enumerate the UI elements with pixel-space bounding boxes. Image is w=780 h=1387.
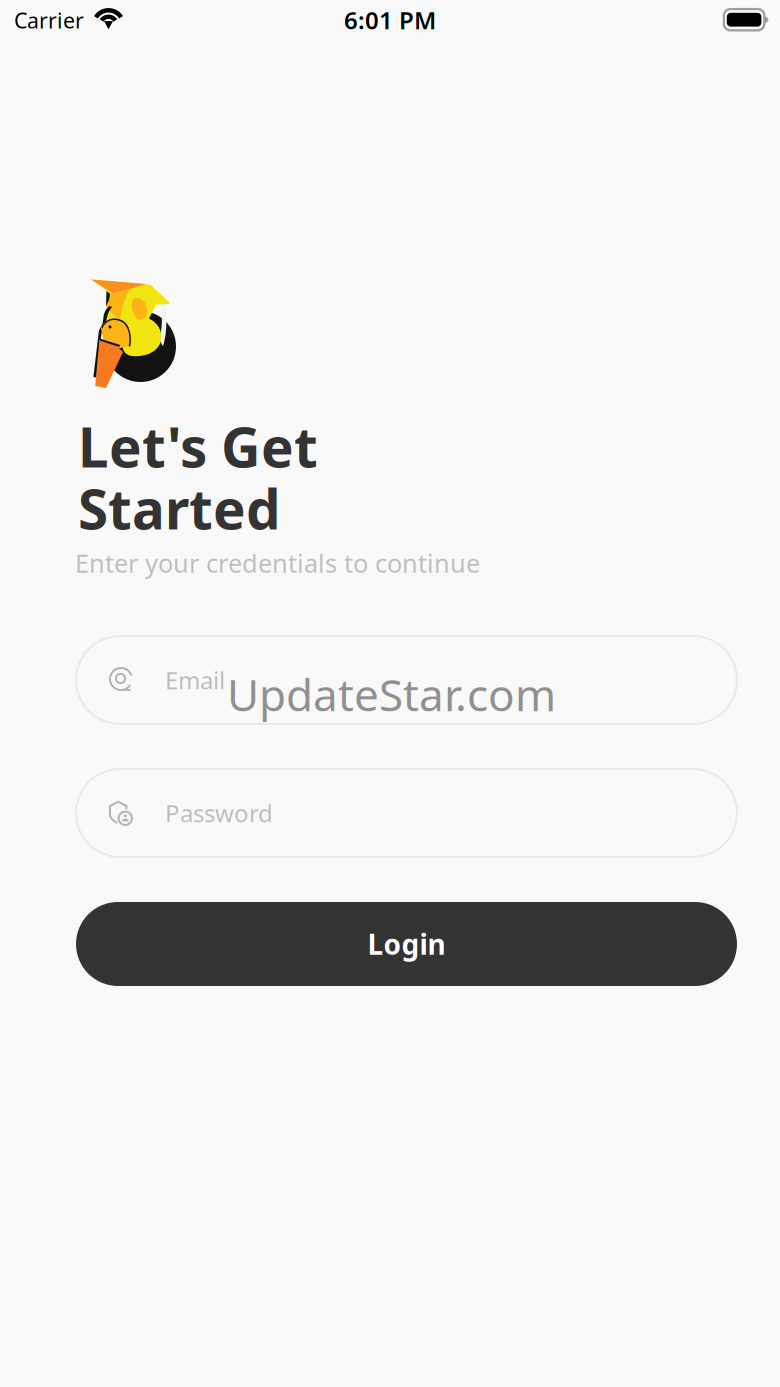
staticText: Enter your credentials to continue	[75, 546, 480, 580]
staticText: UpdateStar.com	[227, 665, 556, 723]
staticText: Let's Get	[78, 410, 318, 483]
staticText: Email	[165, 664, 225, 696]
button[interactable]: Email	[76, 636, 737, 724]
button[interactable]: Password	[76, 769, 737, 857]
staticText: 6:01 PM	[344, 4, 436, 36]
staticText: Password	[165, 797, 273, 829]
staticText: Login	[367, 925, 445, 963]
button[interactable]: Login	[76, 902, 737, 986]
staticText: Carrier	[14, 6, 84, 34]
staticText: Started	[78, 472, 281, 545]
